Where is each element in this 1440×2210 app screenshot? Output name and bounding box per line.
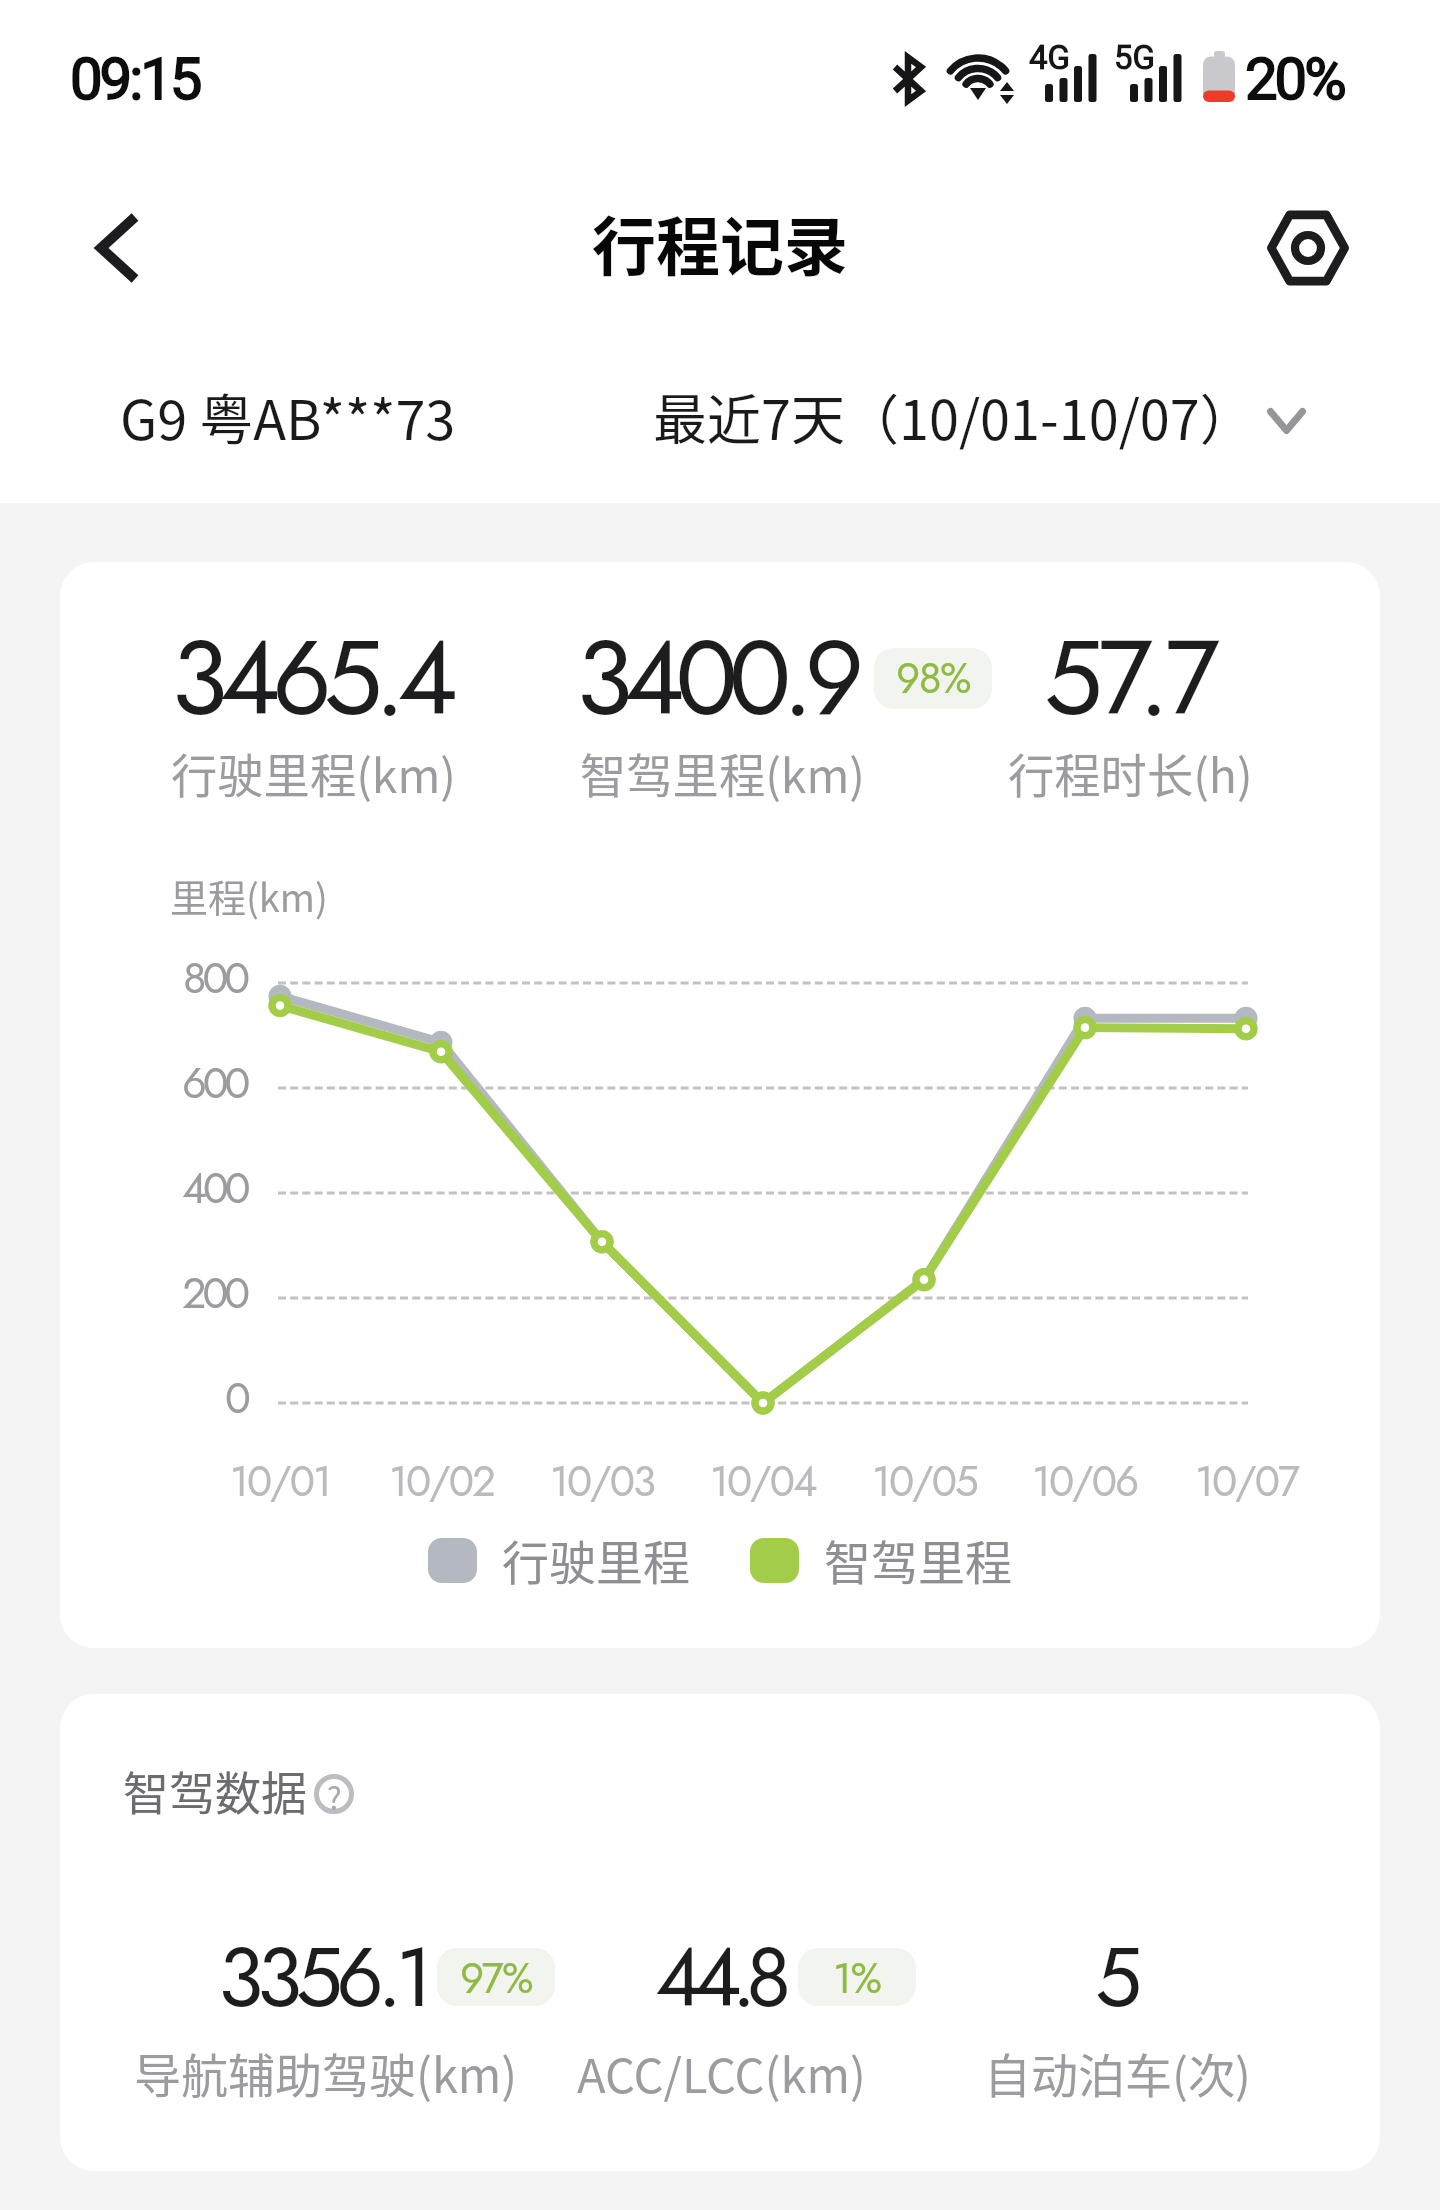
staticText: 行程时长(h): [1008, 739, 1253, 806]
staticText: 5: [1095, 1917, 1136, 2037]
staticText: 1%: [833, 1948, 881, 2006]
staticText: 10/01: [230, 1451, 330, 1512]
staticText: 44.8: [655, 1917, 782, 2037]
staticText: 行程记录: [592, 196, 848, 289]
staticText: 10/03: [550, 1451, 654, 1512]
button[interactable]: G9 粤AB***73: [98, 366, 478, 466]
staticText: 98%: [896, 648, 971, 709]
staticText: 97%: [460, 1948, 533, 2006]
staticText: 800: [183, 947, 247, 1009]
staticText: 3400.9: [576, 603, 856, 753]
staticText: G9 粤AB***73: [120, 377, 456, 455]
staticText: 3356.1: [218, 1917, 427, 2037]
staticText: 智驾数据: [123, 1757, 307, 1824]
staticText: 10/02: [389, 1451, 494, 1512]
button[interactable]: Settings: [1253, 193, 1363, 303]
staticText: 自动泊车(次): [984, 2038, 1251, 2106]
staticText: 20%: [1245, 45, 1344, 113]
staticText: ?: [327, 1774, 342, 1814]
staticText: ACC/LCC(km): [577, 2038, 866, 2106]
staticText: 600: [182, 1052, 247, 1114]
staticText: 智驾里程(km): [580, 739, 865, 806]
staticText: 4G: [1029, 38, 1071, 77]
staticText: 5G: [1114, 38, 1156, 77]
staticText: 3465.4: [171, 603, 450, 753]
staticText: 最近7天（10/01-10/07）: [653, 377, 1254, 455]
staticText: 57.7: [1044, 603, 1216, 753]
staticText: 200: [182, 1262, 247, 1324]
button[interactable]: 智驾数据: [105, 1746, 372, 1834]
staticText: 10/04: [710, 1451, 816, 1512]
button[interactable]: 最近7天（10/01-10/07）: [609, 366, 1329, 466]
staticText: 智驾里程: [824, 1525, 1012, 1593]
staticText: 400: [182, 1157, 247, 1219]
staticText: 行驶里程: [502, 1525, 690, 1593]
staticText: 10/07: [1195, 1451, 1298, 1512]
staticText: 10/05: [872, 1451, 977, 1512]
staticText: 09:15: [70, 45, 200, 113]
staticText: 里程(km): [170, 868, 328, 923]
staticText: 行驶里程(km): [171, 739, 456, 806]
staticText: 0: [225, 1367, 247, 1429]
staticText: 10/06: [1032, 1451, 1138, 1512]
staticText: 导航辅助驾驶(km): [134, 2038, 518, 2106]
button[interactable]: Back: [66, 196, 170, 300]
